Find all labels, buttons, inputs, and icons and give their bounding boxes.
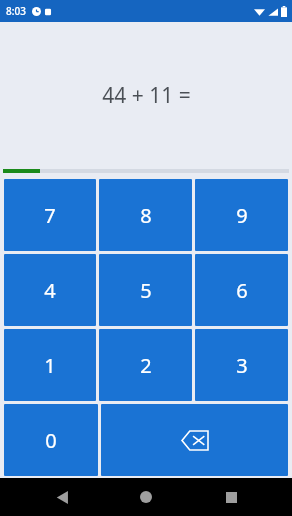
button[interactable]: 7 [4, 179, 96, 251]
button[interactable]: 4 [4, 254, 96, 326]
button[interactable]: 2 [99, 329, 192, 401]
button[interactable]: Back [39, 478, 85, 516]
button[interactable]: 3 [195, 329, 288, 401]
staticText: 9 [236, 202, 248, 229]
button[interactable]: Backspace [101, 404, 288, 476]
staticText: 8 [140, 202, 152, 229]
staticText: 3 [236, 352, 248, 379]
staticText: 0 [45, 427, 57, 454]
staticText: 44 + 11 = [102, 81, 191, 110]
button[interactable]: 9 [195, 179, 288, 251]
staticText: 7 [44, 202, 56, 229]
button[interactable]: 8 [99, 179, 192, 251]
button[interactable]: 5 [99, 254, 192, 326]
button[interactable]: Recent apps [208, 478, 254, 516]
staticText: 1 [44, 352, 56, 379]
staticText: 2 [140, 352, 152, 379]
button[interactable]: Home [123, 478, 169, 516]
button[interactable]: 6 [195, 254, 288, 326]
button[interactable]: 0 [4, 404, 98, 476]
button[interactable]: 1 [4, 329, 96, 401]
staticText: 4 [44, 277, 56, 304]
staticText: 5 [140, 277, 152, 304]
staticText: 8:03 [6, 4, 26, 18]
staticText: 6 [236, 277, 248, 304]
